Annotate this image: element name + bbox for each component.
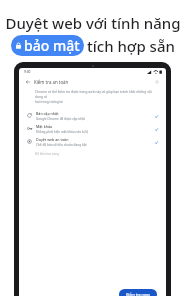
staticText: Duyệt web an toàn <box>36 137 69 142</box>
staticText: Chế độ bảo vệ tiêu chuẩn đang bật <box>36 143 87 147</box>
staticText: 9:30 <box>24 70 31 74</box>
staticText: Đã kiểm tra xong <box>35 152 60 156</box>
staticText: Không phát hiện mật khẩu nào bị lộ <box>36 130 89 134</box>
staticText: bảo mật <box>24 36 80 55</box>
staticText: Kiểm tra ngay <box>126 292 150 296</box>
button[interactable]: Back <box>24 78 32 86</box>
staticText: Google Chrome đã được cập nhật <box>36 117 85 121</box>
staticText: Chrome có thể kiểm tra được trang web nà… <box>35 90 152 104</box>
button[interactable]: Mật khẩu <box>19 122 166 135</box>
button[interactable]: Settings <box>153 78 161 86</box>
button[interactable]: Duyệt web an toàn <box>19 135 166 148</box>
staticText: Kiểm tra an toàn <box>34 79 69 85</box>
staticText: Bản cập nhật <box>36 111 59 116</box>
staticText: Mật khẩu <box>36 124 53 129</box>
staticText: Duyệt web với tính năng <box>5 13 181 33</box>
button[interactable]: Kiểm tra ngay <box>119 289 157 296</box>
staticText: tích hợp sẵn <box>87 36 175 56</box>
button[interactable]: Bản cập nhật <box>19 109 166 122</box>
